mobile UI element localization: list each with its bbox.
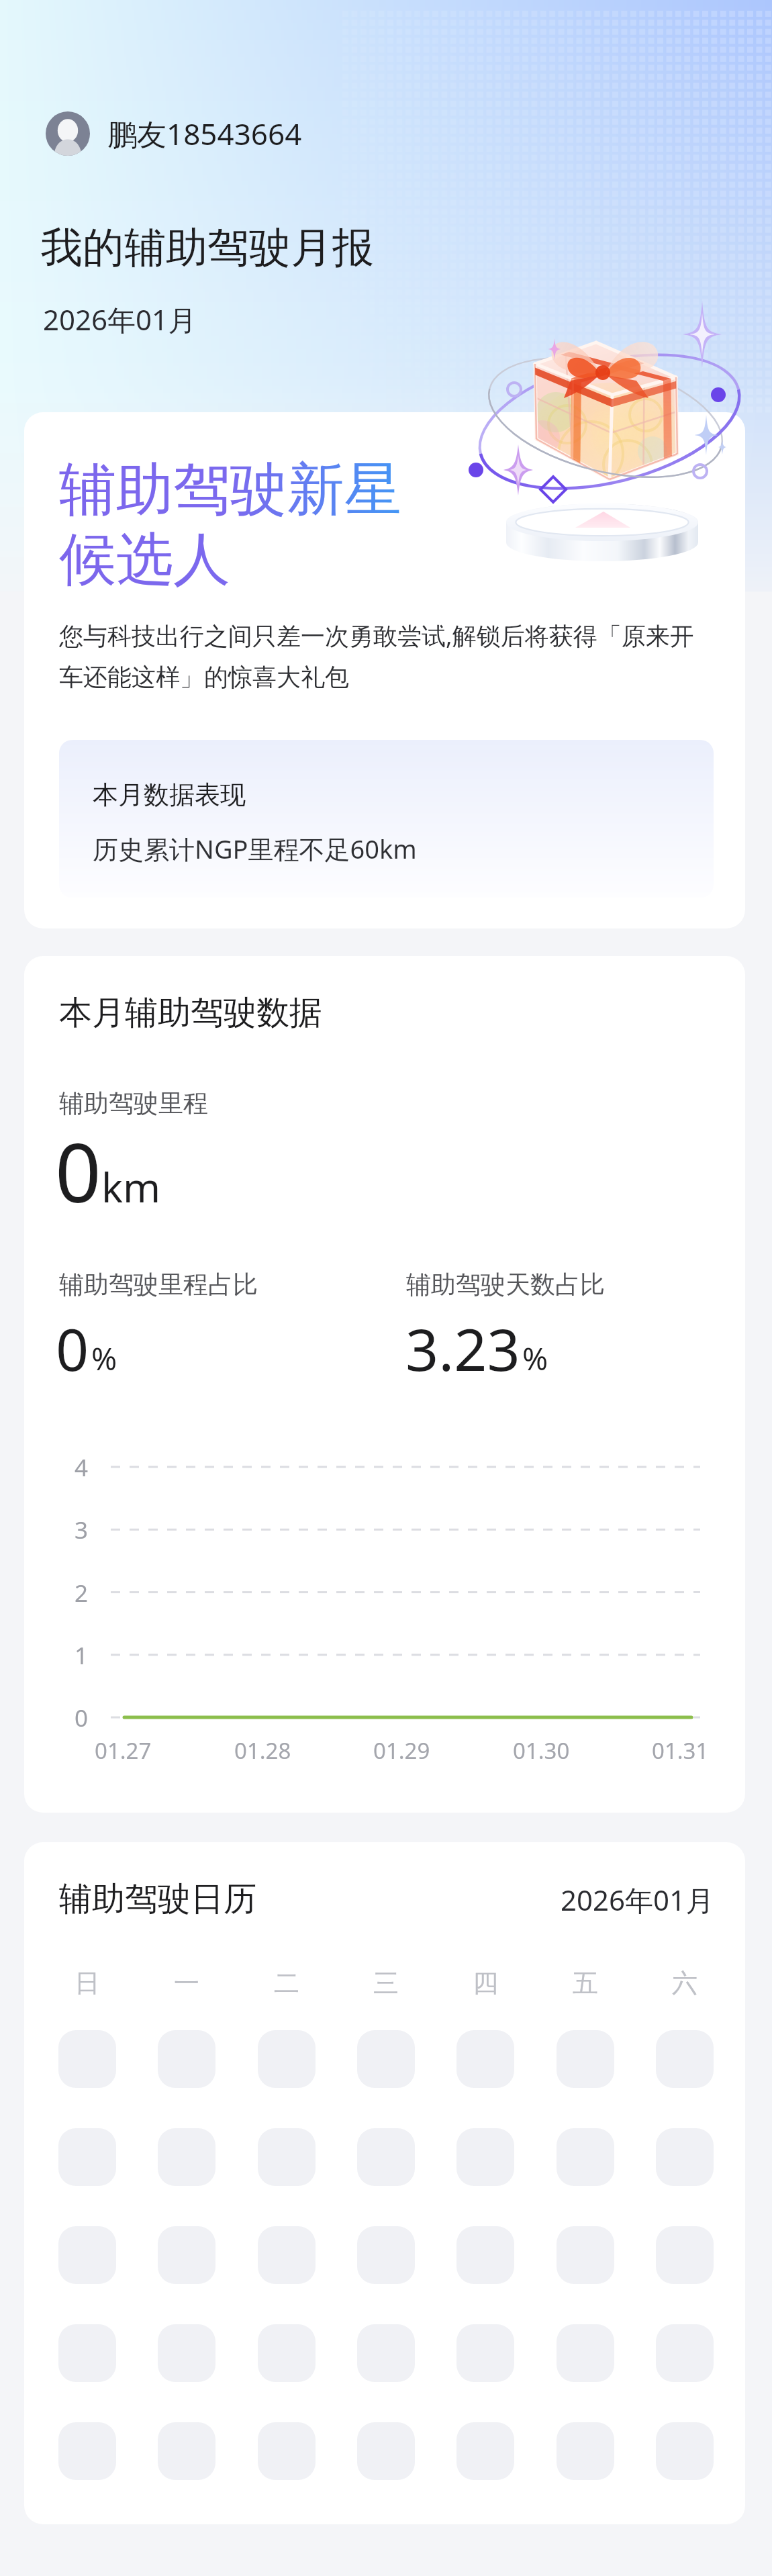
button[interactable]: Day 26 bbox=[456, 2324, 514, 2382]
button[interactable]: Day 16 bbox=[158, 2226, 215, 2284]
staticText: 2026年01月 bbox=[43, 300, 197, 338]
staticText: 01.31 bbox=[652, 1735, 709, 1766]
button[interactable]: Day 24 bbox=[258, 2324, 316, 2382]
button[interactable]: Day 35 bbox=[656, 2422, 714, 2480]
staticText: 一 bbox=[174, 1967, 199, 1999]
other: Profile avatar bbox=[46, 111, 90, 156]
button[interactable]: Day 6 bbox=[557, 2030, 614, 2088]
button[interactable]: Day 19 bbox=[456, 2226, 514, 2284]
staticText: km bbox=[101, 1159, 161, 1214]
staticText: 1 bbox=[75, 1639, 89, 1672]
staticText: 01.30 bbox=[513, 1735, 570, 1766]
staticText: 历史累计NGP里程不足60km bbox=[93, 831, 417, 866]
button[interactable]: Day 4 bbox=[357, 2030, 415, 2088]
staticText: 我的辅助驾驶月报 bbox=[41, 222, 374, 274]
staticText: 候选人 bbox=[59, 524, 230, 595]
button[interactable]: Day 22 bbox=[58, 2324, 116, 2382]
button[interactable]: 辅助驾驶新星 bbox=[24, 412, 745, 928]
button[interactable]: Day 23 bbox=[158, 2324, 215, 2382]
button[interactable]: Day 9 bbox=[158, 2128, 215, 2186]
staticText: 辅助驾驶新星 bbox=[59, 454, 401, 526]
button[interactable]: Day 31 bbox=[258, 2422, 316, 2480]
staticText: 辅助驾驶日历 bbox=[59, 1878, 256, 1920]
staticText: 您与科技出行之间只差一次勇敢尝试,解锁后将获得「原来开 车还能这样」的惊喜大礼包 bbox=[59, 619, 694, 692]
staticText: 01.27 bbox=[95, 1735, 152, 1766]
button[interactable]: Day 7 bbox=[656, 2030, 714, 2088]
button[interactable]: Day 1 bbox=[58, 2030, 116, 2088]
staticText: 四 bbox=[473, 1967, 498, 1999]
staticText: 日 bbox=[75, 1967, 100, 1999]
staticText: 4 bbox=[75, 1451, 89, 1484]
button[interactable]: Day 20 bbox=[557, 2226, 614, 2284]
staticText: 01.28 bbox=[234, 1735, 291, 1766]
button[interactable]: Day 27 bbox=[557, 2324, 614, 2382]
button[interactable]: Day 25 bbox=[357, 2324, 415, 2382]
button[interactable]: Day 12 bbox=[456, 2128, 514, 2186]
staticText: 0 bbox=[55, 1116, 101, 1226]
button[interactable]: Day 29 bbox=[58, 2422, 116, 2480]
staticText: 本月辅助驾驶数据 bbox=[59, 992, 322, 1034]
button[interactable]: Day 30 bbox=[158, 2422, 215, 2480]
staticText: 五 bbox=[573, 1967, 598, 1999]
button[interactable]: Day 11 bbox=[357, 2128, 415, 2186]
button[interactable]: 本月辅助驾驶数据 bbox=[24, 956, 745, 1813]
staticText: 辅助驾驶里程占比 bbox=[59, 1269, 258, 1300]
button[interactable]: Day 28 bbox=[656, 2324, 714, 2382]
button[interactable]: Day 18 bbox=[357, 2226, 415, 2284]
staticText: 本月数据表现 bbox=[93, 779, 246, 811]
staticText: 3 bbox=[75, 1514, 89, 1546]
staticText: 三 bbox=[373, 1967, 399, 1999]
staticText: 辅助驾驶天数占比 bbox=[406, 1269, 605, 1300]
staticText: 01.29 bbox=[373, 1735, 430, 1766]
button[interactable]: Day 21 bbox=[656, 2226, 714, 2284]
staticText: 0 bbox=[56, 1309, 89, 1388]
staticText: 3.23 bbox=[405, 1309, 520, 1388]
staticText: % bbox=[522, 1337, 548, 1380]
button[interactable]: Day 8 bbox=[58, 2128, 116, 2186]
staticText: 辅助驾驶里程 bbox=[59, 1088, 208, 1119]
button[interactable]: Profile avatar bbox=[40, 109, 313, 158]
staticText: 六 bbox=[672, 1967, 697, 1999]
staticText: 0 bbox=[75, 1702, 89, 1734]
button[interactable]: Day 3 bbox=[258, 2030, 316, 2088]
button[interactable]: Day 2 bbox=[158, 2030, 215, 2088]
staticText: % bbox=[91, 1337, 117, 1380]
button[interactable]: Day 10 bbox=[258, 2128, 316, 2186]
staticText: 2 bbox=[75, 1577, 89, 1609]
staticText: 二 bbox=[274, 1967, 299, 1999]
button[interactable]: 辅助驾驶日历 bbox=[24, 1842, 745, 2524]
button[interactable]: Day 34 bbox=[557, 2422, 614, 2480]
button[interactable]: Day 5 bbox=[456, 2030, 514, 2088]
staticText: 2026年01月 bbox=[561, 1880, 714, 1919]
staticText: 鹏友18543664 bbox=[107, 113, 302, 154]
button[interactable]: Day 13 bbox=[557, 2128, 614, 2186]
button[interactable]: Day 33 bbox=[456, 2422, 514, 2480]
button[interactable]: Day 14 bbox=[656, 2128, 714, 2186]
button[interactable]: Day 15 bbox=[58, 2226, 116, 2284]
button[interactable]: Day 32 bbox=[357, 2422, 415, 2480]
button[interactable]: Day 17 bbox=[258, 2226, 316, 2284]
